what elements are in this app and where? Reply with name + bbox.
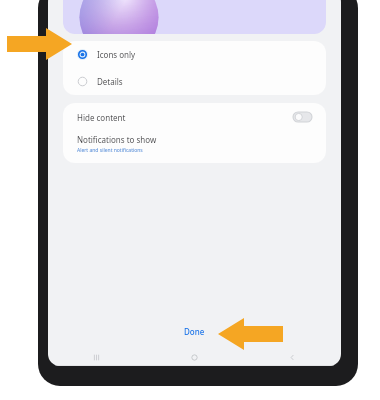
staticText: Done [184, 326, 205, 337]
button[interactable]: Hide content [63, 103, 326, 131]
button[interactable]: Notifications to show [63, 131, 326, 163]
staticText: Notifications to show [77, 134, 157, 145]
staticText: Hide content [77, 112, 126, 123]
staticText: Alert and silent notifications [77, 147, 143, 154]
button[interactable]: Back [243, 348, 341, 366]
button[interactable]: Done [176, 324, 213, 339]
button[interactable]: Details [63, 68, 326, 95]
button[interactable]: Icons only [63, 41, 326, 68]
button[interactable]: Home [145, 348, 243, 366]
staticText: Details [97, 76, 123, 87]
button[interactable]: Recent apps [48, 348, 145, 366]
staticText: Icons only [97, 49, 136, 60]
